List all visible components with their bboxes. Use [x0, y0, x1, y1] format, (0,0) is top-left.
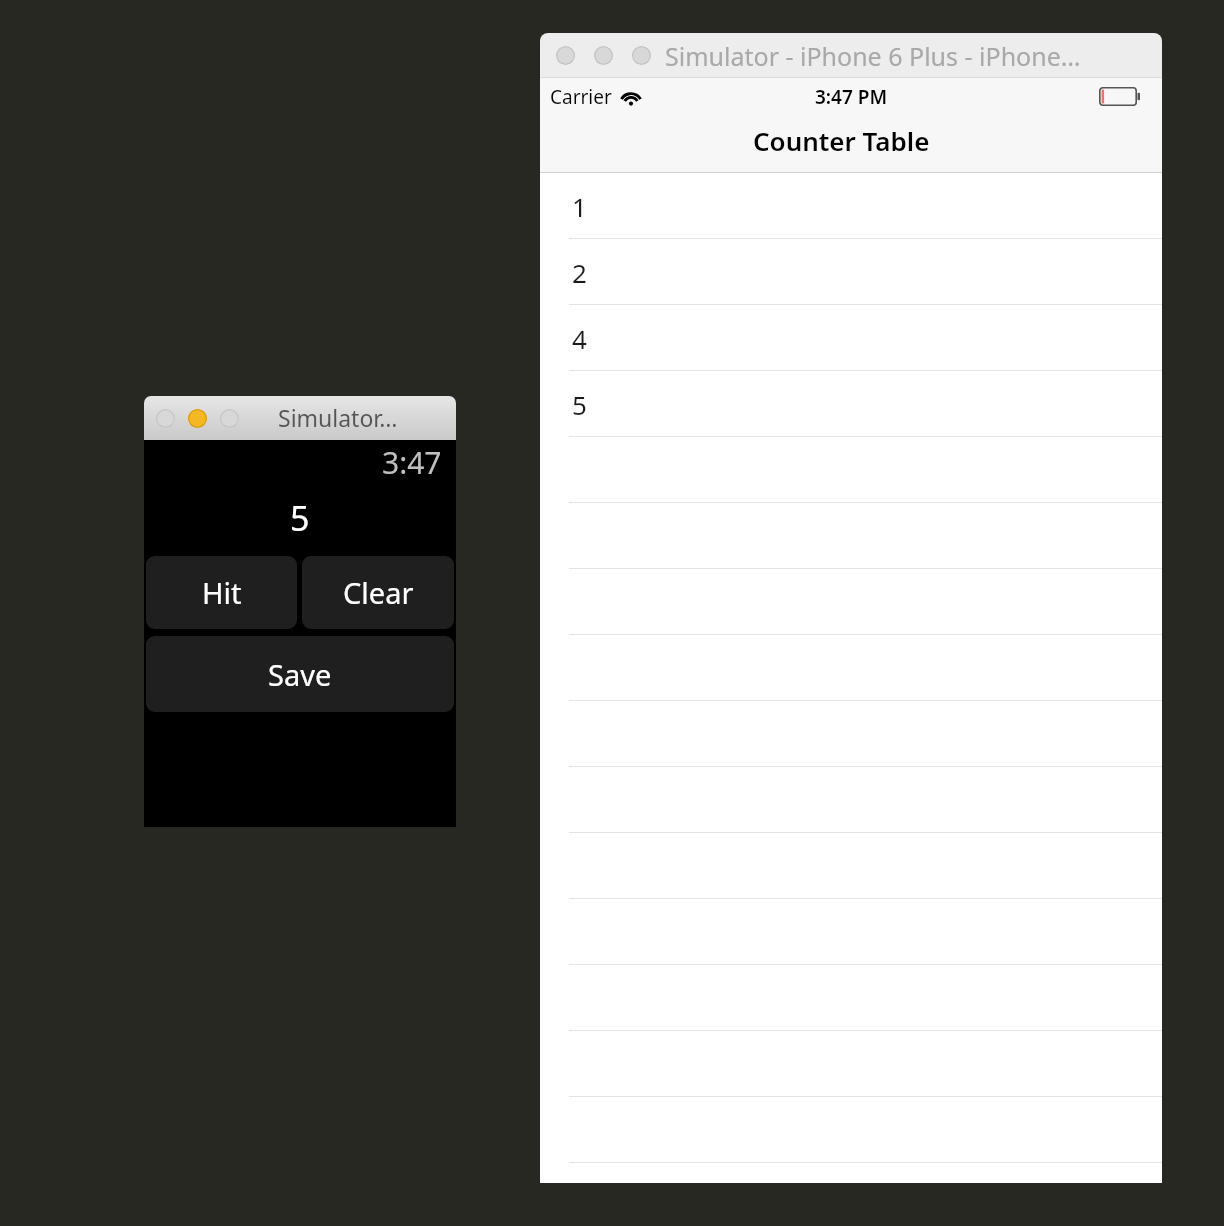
button[interactable]	[540, 1097, 1162, 1163]
staticText: 4	[572, 321, 587, 356]
button[interactable]	[540, 1031, 1162, 1097]
button[interactable]	[540, 635, 1162, 701]
button[interactable]	[540, 833, 1162, 899]
button[interactable]: Minimize	[594, 46, 613, 65]
staticText: Simulator…	[278, 402, 398, 433]
button[interactable]	[540, 965, 1162, 1031]
button[interactable]: 4	[540, 305, 1162, 371]
button[interactable]: 1	[540, 173, 1162, 239]
button[interactable]	[540, 503, 1162, 569]
button[interactable]	[540, 437, 1162, 503]
button[interactable]: Minimize	[188, 409, 207, 428]
staticText: Clear	[343, 573, 414, 612]
staticText: 1	[572, 189, 587, 224]
staticText: Save	[268, 655, 332, 694]
button[interactable]: Zoom	[220, 409, 239, 428]
button[interactable]: 5	[540, 371, 1162, 437]
button[interactable]	[540, 767, 1162, 833]
staticText: Hit	[202, 573, 242, 612]
button[interactable]: Hit	[146, 556, 297, 629]
staticText: Simulator - iPhone 6 Plus - iPhone…	[665, 39, 1081, 73]
button[interactable]: Zoom	[632, 46, 651, 65]
button[interactable]: Clear	[302, 556, 454, 629]
button[interactable]	[540, 569, 1162, 635]
button[interactable]: Close	[556, 46, 575, 65]
staticText: 5	[572, 387, 587, 422]
staticText: 3:47 PM	[815, 84, 888, 110]
staticText: 5	[290, 495, 310, 541]
staticText: Counter Table	[753, 123, 930, 158]
button[interactable]: Close	[156, 409, 175, 428]
button[interactable]	[540, 701, 1162, 767]
button[interactable]: 2	[540, 239, 1162, 305]
staticText: Carrier	[550, 84, 612, 110]
button[interactable]: Save	[146, 636, 454, 712]
staticText: 3:47	[382, 442, 442, 483]
staticText: 2	[572, 255, 587, 290]
button[interactable]	[540, 899, 1162, 965]
